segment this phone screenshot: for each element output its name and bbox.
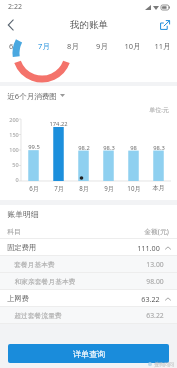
staticText: 13.00	[146, 260, 164, 269]
staticText: 单位:元	[149, 106, 169, 114]
staticText: 固定费用	[7, 243, 36, 252]
staticText: 搜狗问问	[154, 361, 174, 367]
staticText: 11月	[154, 41, 171, 51]
staticText: 上网费	[7, 294, 29, 303]
staticText: 我的账单	[70, 19, 108, 31]
button[interactable]: 9月	[87, 36, 117, 56]
staticText: 8月	[67, 41, 79, 51]
staticText: 100	[9, 146, 19, 153]
staticText: 63.22	[141, 294, 160, 304]
button[interactable]: 7月	[29, 36, 58, 56]
staticText: 98	[130, 144, 137, 152]
button[interactable]: 11月	[147, 36, 177, 56]
button[interactable]: 8月	[58, 36, 87, 56]
button[interactable]: 6月	[0, 36, 29, 56]
staticText: 超过套餐流量费	[14, 311, 62, 320]
button[interactable]: 返回	[0, 14, 22, 36]
staticText: 本月	[152, 184, 165, 192]
staticText: 0	[15, 176, 19, 183]
staticText: 8月	[79, 184, 89, 192]
staticText: 9月	[104, 184, 114, 192]
staticText: 174.22	[49, 120, 68, 128]
staticText: 6月	[9, 41, 21, 51]
staticText: 50	[12, 161, 19, 168]
button[interactable]: 分享	[153, 14, 177, 36]
staticText: 近6个月消费图	[7, 91, 57, 101]
staticText: 10月	[124, 41, 141, 51]
button[interactable]: 上网费	[0, 290, 177, 307]
staticText: 详单查询	[73, 349, 105, 359]
staticText: 98.3	[153, 144, 165, 152]
staticText: 98.3	[103, 144, 115, 152]
staticText: 111.00	[137, 243, 160, 253]
staticText: 金额(元)	[144, 227, 169, 236]
staticText: 98.2	[78, 144, 90, 152]
button[interactable]: 10月	[117, 36, 147, 56]
button[interactable]: 近6个月消费图	[0, 86, 177, 105]
staticText: 99.5	[28, 143, 40, 151]
staticText: 和家亲套餐月基本费	[14, 277, 76, 286]
staticText: 7月	[38, 41, 50, 51]
staticText: 200	[9, 116, 19, 123]
staticText: 账单明细	[7, 209, 39, 219]
button[interactable]: 详单查询	[8, 344, 169, 363]
button[interactable]: 固定费用	[0, 239, 177, 256]
staticText: 63.22	[146, 311, 164, 320]
staticText: 2:22	[8, 2, 22, 12]
staticText: 7月	[54, 184, 64, 192]
staticText: 套餐月基本费	[14, 260, 55, 269]
staticText: 10月	[127, 184, 141, 192]
staticText: 98.00	[146, 277, 164, 286]
staticText: 科目	[7, 227, 21, 236]
staticText: 150	[9, 131, 19, 138]
staticText: 6月	[29, 184, 39, 192]
staticText: 9月	[96, 41, 108, 51]
